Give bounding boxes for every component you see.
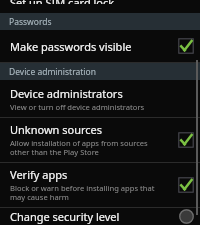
staticText: Change security level bbox=[10, 209, 120, 224]
staticText: Device administration bbox=[9, 66, 96, 78]
staticText: Set up SIM card lock bbox=[10, 0, 115, 4]
staticText: View or turn off device administrators bbox=[10, 102, 145, 112]
staticText: Make passwords visible bbox=[10, 39, 132, 54]
button[interactable]: Make passwords visible bbox=[0, 30, 200, 62]
button[interactable]: Set up SIM card lock bbox=[0, 0, 200, 9]
button[interactable]: Unknown sources bbox=[0, 118, 200, 162]
button[interactable]: Verify apps bbox=[0, 163, 200, 207]
button[interactable]: Device administrators bbox=[0, 80, 200, 117]
staticText: Block or warn before installing apps tha… bbox=[10, 183, 155, 203]
staticText: Verify apps bbox=[10, 167, 68, 182]
staticText: Device administrators bbox=[10, 86, 123, 101]
staticText: Passwords bbox=[9, 16, 52, 28]
staticText: Unknown sources bbox=[10, 122, 103, 137]
staticText: Allow installation of apps from sources … bbox=[10, 138, 148, 158]
button[interactable]: Change security level bbox=[0, 208, 200, 225]
